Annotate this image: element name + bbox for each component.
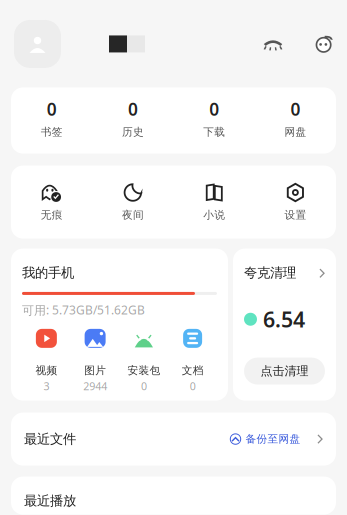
staticText: 0 (141, 379, 147, 393)
button[interactable]: 0 (255, 97, 336, 138)
staticText: 视频 (35, 364, 57, 377)
staticText: 6.54 (263, 305, 305, 333)
staticText: 文档 (182, 364, 204, 377)
staticText: 下载 (203, 125, 225, 139)
button[interactable]: 设置 (255, 182, 336, 222)
staticText: 备份至网盘 (245, 432, 300, 446)
staticText: 2944 (83, 379, 107, 393)
staticText: 最近文件 (24, 431, 76, 447)
staticText: 0 (47, 97, 57, 120)
button[interactable]: 无痕 (11, 182, 92, 222)
staticText: 书签 (41, 125, 63, 139)
button[interactable]: Feedback (314, 34, 333, 53)
button[interactable]: 视频 (22, 329, 71, 393)
button[interactable]: Eye comfort mode (263, 36, 283, 51)
staticText: 历史 (122, 125, 144, 139)
staticText: 小说 (203, 208, 225, 222)
button[interactable]: 夜间 (92, 182, 173, 222)
staticText: 0 (290, 97, 300, 120)
button[interactable]: 0 (11, 97, 92, 138)
staticText: 可用: 5.73GB/51.62GB (22, 302, 145, 318)
staticText: 0 (190, 379, 196, 393)
staticText: 我的手机 (22, 265, 74, 281)
staticText: 无痕 (41, 208, 63, 222)
button[interactable]: 图片 (71, 329, 120, 393)
staticText: 点击清理 (260, 364, 308, 378)
staticText: 最近播放 (24, 493, 76, 509)
button[interactable]: 文档 (168, 329, 217, 393)
button[interactable]: 0 (92, 97, 173, 138)
button[interactable]: Profile (14, 20, 61, 68)
staticText: 网盘 (284, 125, 306, 139)
button[interactable]: 夸克清理 (244, 265, 325, 281)
staticText: 安装包 (127, 364, 160, 377)
button[interactable]: 最近文件 (11, 413, 336, 466)
staticText: 0 (128, 97, 138, 120)
staticText: 夸克清理 (244, 265, 296, 281)
button[interactable]: 小说 (173, 182, 255, 222)
staticText: 0 (209, 97, 219, 120)
button[interactable]: 点击清理 (244, 358, 325, 385)
button[interactable]: 安装包 (119, 329, 168, 393)
staticText: 夜间 (122, 208, 144, 222)
staticText: 图片 (84, 364, 106, 377)
staticText: 3 (43, 379, 49, 393)
button[interactable]: 0 (173, 97, 255, 138)
staticText: 设置 (284, 208, 306, 222)
